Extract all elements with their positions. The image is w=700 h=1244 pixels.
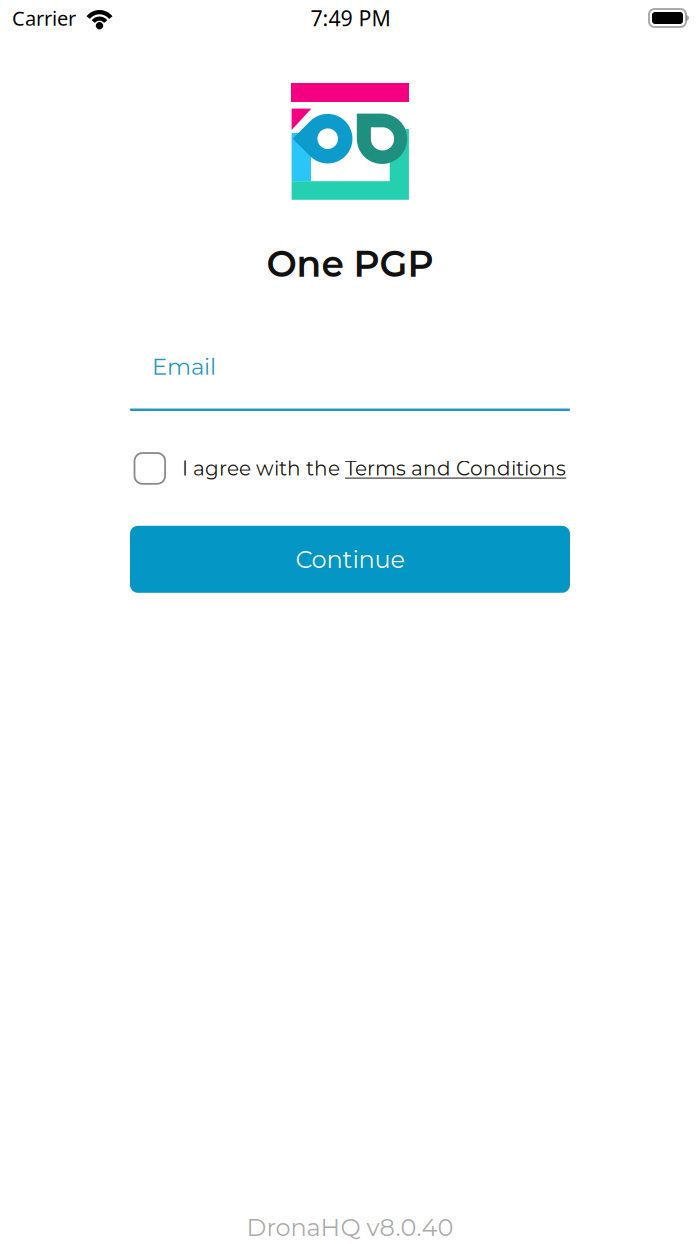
- staticText: Carrier: [12, 5, 76, 31]
- staticText: DronaHQ v8.0.40: [246, 1213, 453, 1242]
- staticText: One PGP: [266, 242, 433, 286]
- staticText: I agree with the Terms and Conditions: [182, 456, 566, 480]
- staticText: Email: [152, 353, 216, 380]
- button[interactable]: Continue: [130, 526, 570, 593]
- button[interactable]: I agree with the Terms and Conditions: [115, 453, 584, 484]
- staticText: 7:49 PM: [310, 4, 390, 32]
- staticText: Continue: [295, 545, 404, 574]
